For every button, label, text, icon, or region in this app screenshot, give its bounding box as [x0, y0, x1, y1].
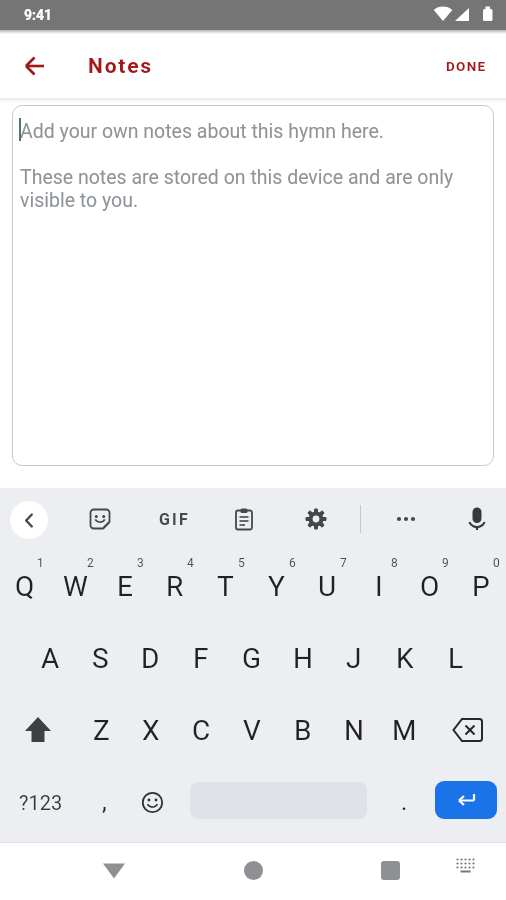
- staticText: 9:41: [24, 7, 53, 23]
- staticText: .: [401, 788, 408, 816]
- button[interactable]: [10, 501, 48, 539]
- button[interactable]: J: [328, 622, 379, 694]
- staticText: 8: [391, 556, 398, 570]
- staticText: M: [392, 714, 417, 747]
- button[interactable]: N: [328, 694, 379, 766]
- staticText: F: [193, 642, 209, 675]
- staticText: 5: [238, 556, 245, 570]
- button[interactable]: X: [126, 694, 176, 766]
- button[interactable]: [127, 766, 177, 838]
- button[interactable]: O: [404, 550, 455, 622]
- staticText: 7: [340, 556, 347, 570]
- button[interactable]: I: [353, 550, 404, 622]
- staticText: P: [472, 570, 490, 603]
- button[interactable]: Q: [0, 550, 50, 622]
- staticText: Add your own notes about this hymn here.…: [20, 120, 454, 212]
- staticText: GIF: [159, 510, 190, 529]
- staticText: Y: [268, 570, 285, 603]
- button[interactable]: E: [100, 550, 150, 622]
- button[interactable]: Z: [76, 694, 126, 766]
- staticText: X: [142, 714, 160, 747]
- staticText: Z: [93, 714, 110, 747]
- button[interactable]: [430, 694, 506, 766]
- staticText: A: [41, 642, 60, 675]
- staticText: 4: [187, 556, 194, 570]
- staticText: N: [344, 714, 364, 747]
- button[interactable]: Add your own notes about this hymn here.…: [12, 105, 494, 466]
- button[interactable]: [435, 781, 497, 819]
- button[interactable]: D: [125, 622, 175, 694]
- staticText: C: [192, 714, 211, 747]
- button[interactable]: W: [50, 550, 100, 622]
- button[interactable]: T: [200, 550, 251, 622]
- button[interactable]: G: [226, 622, 277, 694]
- staticText: T: [217, 570, 234, 603]
- staticText: ,: [102, 788, 107, 816]
- button[interactable]: GIF: [152, 503, 196, 535]
- staticText: L: [448, 642, 464, 675]
- button[interactable]: [228, 503, 260, 535]
- button[interactable]: [90, 847, 138, 895]
- staticText: D: [141, 642, 160, 675]
- button[interactable]: [461, 503, 493, 535]
- staticText: B: [294, 714, 312, 747]
- staticText: 1: [37, 556, 44, 570]
- staticText: 6: [289, 556, 296, 570]
- button[interactable]: S: [75, 622, 125, 694]
- staticText: Notes: [88, 54, 153, 79]
- button[interactable]: U: [302, 550, 353, 622]
- staticText: U: [318, 570, 337, 603]
- button[interactable]: B: [277, 694, 328, 766]
- staticText: 0: [493, 556, 500, 570]
- button[interactable]: [11, 42, 59, 90]
- staticText: R: [166, 570, 184, 603]
- button[interactable]: .: [380, 766, 428, 838]
- staticText: 2: [87, 556, 94, 570]
- button[interactable]: V: [226, 694, 277, 766]
- staticText: 3: [137, 556, 144, 570]
- staticText: J: [346, 642, 362, 675]
- staticText: V: [243, 714, 261, 747]
- button[interactable]: F: [175, 622, 226, 694]
- staticText: Q: [15, 570, 35, 603]
- button[interactable]: K: [379, 622, 430, 694]
- button[interactable]: Y: [251, 550, 302, 622]
- button[interactable]: H: [277, 622, 328, 694]
- button[interactable]: [366, 846, 414, 894]
- staticText: S: [92, 642, 109, 675]
- button[interactable]: [84, 503, 116, 535]
- button[interactable]: ,: [81, 766, 127, 838]
- button[interactable]: [390, 503, 422, 535]
- staticText: O: [420, 570, 440, 603]
- button[interactable]: L: [430, 622, 481, 694]
- staticText: E: [117, 570, 133, 603]
- staticText: I: [375, 570, 383, 603]
- button[interactable]: [445, 845, 485, 885]
- staticText: K: [396, 642, 414, 675]
- staticText: ?123: [19, 791, 63, 814]
- staticText: H: [293, 642, 313, 675]
- staticText: G: [242, 642, 262, 675]
- button[interactable]: M: [379, 694, 430, 766]
- staticText: DONE: [446, 58, 487, 74]
- button[interactable]: A: [25, 622, 75, 694]
- button[interactable]: [300, 503, 332, 535]
- button[interactable]: C: [176, 694, 226, 766]
- staticText: W: [63, 570, 88, 603]
- button[interactable]: R: [150, 550, 200, 622]
- button[interactable]: [229, 846, 277, 894]
- button[interactable]: P: [455, 550, 506, 622]
- button[interactable]: DONE: [435, 47, 498, 85]
- button[interactable]: [0, 694, 76, 766]
- button[interactable]: ?123: [0, 766, 81, 838]
- staticText: 9: [442, 556, 449, 570]
